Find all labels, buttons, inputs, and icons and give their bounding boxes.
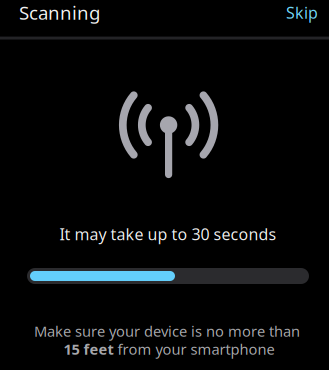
staticText: 15 feet from your smartphone — [63, 339, 274, 359]
staticText: Scanning — [19, 0, 100, 25]
button[interactable]: Skip — [278, 0, 326, 30]
staticText: It may take up to 30 seconds — [59, 223, 276, 245]
staticText: Skip — [286, 2, 318, 23]
staticText: Make sure your device is no more than — [34, 321, 300, 341]
